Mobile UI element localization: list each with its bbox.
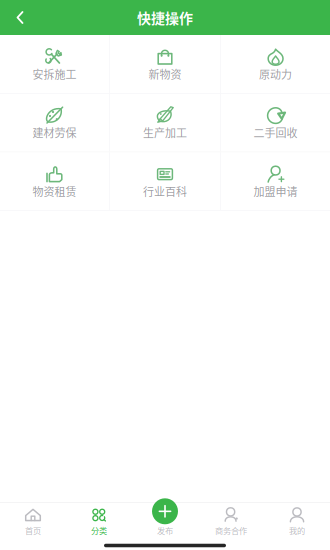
staticText: 行业百科 [143, 183, 187, 199]
button[interactable]: 生产加工 [110, 94, 220, 152]
button[interactable]: 我的 [264, 503, 330, 541]
staticText: 分类 [91, 525, 107, 536]
button[interactable]: 原动力 [221, 35, 330, 93]
button[interactable]: 发布 [132, 503, 198, 541]
staticText: 快捷操作 [137, 7, 193, 28]
button[interactable]: 行业百科 [110, 152, 220, 210]
button[interactable]: 首页 [0, 503, 66, 541]
button[interactable]: 物资租赁 [0, 152, 109, 210]
button[interactable]: 新物资 [110, 35, 220, 93]
staticText: 商务合作 [215, 525, 247, 536]
staticText: 生产加工 [143, 125, 187, 140]
staticText: 二手回收 [254, 125, 298, 140]
button[interactable]: 安拆施工 [0, 35, 109, 93]
staticText: 发布 [157, 525, 173, 536]
staticText: 安拆施工 [32, 66, 76, 82]
button[interactable]: 建材劳保 [0, 94, 109, 152]
button[interactable]: 二手回收 [221, 94, 330, 152]
button[interactable]: 加盟申请 [221, 152, 330, 210]
button[interactable]: 商务合作 [198, 503, 264, 541]
button[interactable]: 发布 [132, 498, 198, 524]
staticText: 物资租赁 [32, 183, 76, 199]
staticText: 我的 [289, 525, 305, 536]
staticText: 建材劳保 [32, 125, 76, 140]
staticText: 加盟申请 [254, 183, 298, 199]
staticText: 原动力 [259, 66, 292, 82]
staticText: 新物资 [148, 66, 181, 82]
button[interactable]: 分类 [66, 503, 132, 541]
staticText: 首页 [25, 525, 41, 536]
button[interactable]: Back [0, 0, 40, 35]
